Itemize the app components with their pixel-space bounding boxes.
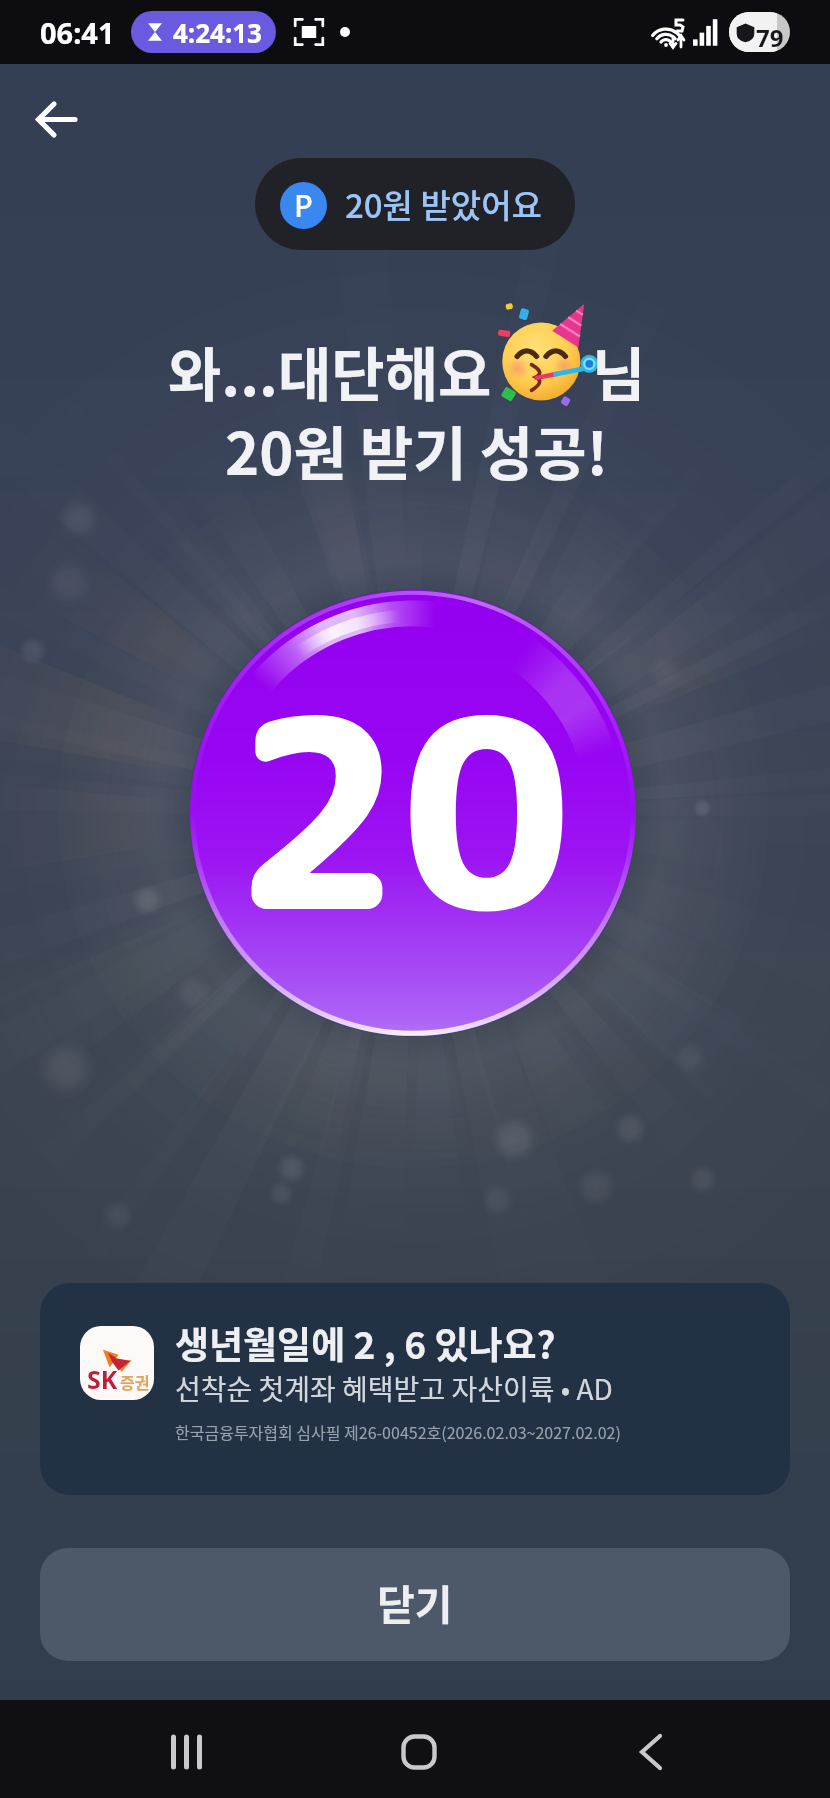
- button[interactable]: P: [255, 158, 575, 250]
- staticText: 증권: [120, 1370, 150, 1393]
- button[interactable]: Back: [595, 1724, 707, 1780]
- staticText: 닫기: [377, 1572, 453, 1631]
- button[interactable]: Back: [22, 84, 92, 154]
- staticText: 20원 받았어요: [345, 180, 542, 228]
- staticText: 4:24:13: [173, 15, 262, 50]
- staticText: 79: [756, 21, 784, 52]
- staticText: 20원 받기 성공!: [225, 408, 609, 492]
- staticText: SK: [87, 1362, 118, 1396]
- button[interactable]: Recents: [131, 1724, 243, 1780]
- staticText: P: [294, 184, 313, 226]
- button[interactable]: Home: [363, 1724, 475, 1780]
- button[interactable]: 닫기: [40, 1548, 790, 1661]
- staticText: 20: [231, 627, 572, 992]
- button[interactable]: SK: [40, 1283, 790, 1495]
- staticText: 와...대단해요: [168, 329, 492, 413]
- staticText: 님: [592, 329, 646, 413]
- staticText: 생년월일에 2 , 6 있나요?: [175, 1316, 556, 1370]
- staticText: 한국금융투자협회 심사필 제26-00452호(2026.02.03~2027.…: [175, 1420, 621, 1443]
- staticText: 선착순 첫계좌 혜택받고 자산이륙 • AD: [175, 1368, 613, 1409]
- staticText: 06:41: [40, 13, 115, 52]
